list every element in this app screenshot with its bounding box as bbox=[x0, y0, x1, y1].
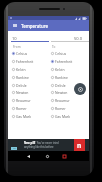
button[interactable]: 50.0 bbox=[51, 35, 89, 42]
button[interactable]: Reaumur bbox=[51, 96, 88, 104]
button[interactable]: Romer bbox=[51, 104, 88, 112]
button[interactable]: 10 bbox=[11, 35, 49, 42]
staticText: Rankine bbox=[16, 75, 29, 80]
staticText: 10 bbox=[12, 36, 17, 42]
button[interactable]: Home bbox=[40, 151, 54, 161]
staticText: Reaumur bbox=[55, 98, 70, 103]
staticText: Rankine bbox=[55, 75, 68, 80]
button[interactable]: Gas Mark bbox=[12, 112, 50, 120]
staticText: Newton bbox=[55, 90, 68, 95]
staticText: Newton bbox=[16, 90, 29, 95]
button[interactable]: Fahrenheit bbox=[51, 57, 88, 65]
staticText: From bbox=[13, 45, 21, 49]
button[interactable]: Kelvin bbox=[12, 65, 50, 73]
button[interactable]: Rankine bbox=[51, 73, 88, 81]
staticText: Temperature bbox=[21, 23, 49, 29]
button[interactable]: Reaumur bbox=[12, 96, 50, 104]
button[interactable]: Gas Mark bbox=[51, 112, 88, 120]
staticText: 50.0 bbox=[51, 36, 82, 42]
staticText: You've never tried bbox=[36, 141, 59, 145]
staticText: Romer bbox=[55, 106, 66, 111]
staticText: anything like this before bbox=[24, 145, 54, 149]
staticText: Celsius bbox=[16, 51, 28, 56]
staticText: To bbox=[52, 45, 56, 49]
button[interactable]: Romer bbox=[12, 104, 50, 112]
button[interactable]: Delisle bbox=[12, 81, 50, 89]
staticText: Ad bbox=[13, 147, 16, 150]
button[interactable]: Newton bbox=[12, 88, 50, 96]
staticText: Fahrenheit bbox=[16, 59, 34, 64]
button[interactable]: Delisle bbox=[51, 81, 88, 89]
staticText: Delisle bbox=[55, 83, 66, 88]
staticText: Romer bbox=[16, 106, 27, 111]
button[interactable]: Newton bbox=[51, 88, 88, 96]
button[interactable]: Kelvin bbox=[51, 65, 88, 73]
button[interactable]: Celsius bbox=[51, 49, 88, 57]
button[interactable]: New pill! bbox=[8, 139, 89, 152]
staticText: Kelvin bbox=[16, 67, 26, 72]
staticText: Gas Mark bbox=[55, 114, 71, 119]
staticText: Celsius bbox=[55, 51, 67, 56]
staticText: Kelvin bbox=[55, 67, 65, 72]
button[interactable]: Fahrenheit bbox=[12, 57, 50, 65]
staticText: n bbox=[77, 141, 82, 150]
staticText: Gas Mark bbox=[16, 114, 32, 119]
button[interactable]: Recent apps bbox=[57, 151, 71, 161]
button[interactable]: Celsius bbox=[12, 49, 50, 57]
staticText: Delisle bbox=[16, 83, 27, 88]
staticText: Reaumur bbox=[16, 98, 31, 103]
button[interactable]: Open navigation drawer bbox=[8, 20, 21, 31]
button[interactable]: Swap units bbox=[74, 83, 86, 95]
button[interactable]: Rankine bbox=[12, 73, 50, 81]
staticText: Fahrenheit bbox=[55, 59, 73, 64]
staticText: New pill! bbox=[24, 141, 36, 145]
button[interactable]: Back bbox=[21, 151, 35, 161]
